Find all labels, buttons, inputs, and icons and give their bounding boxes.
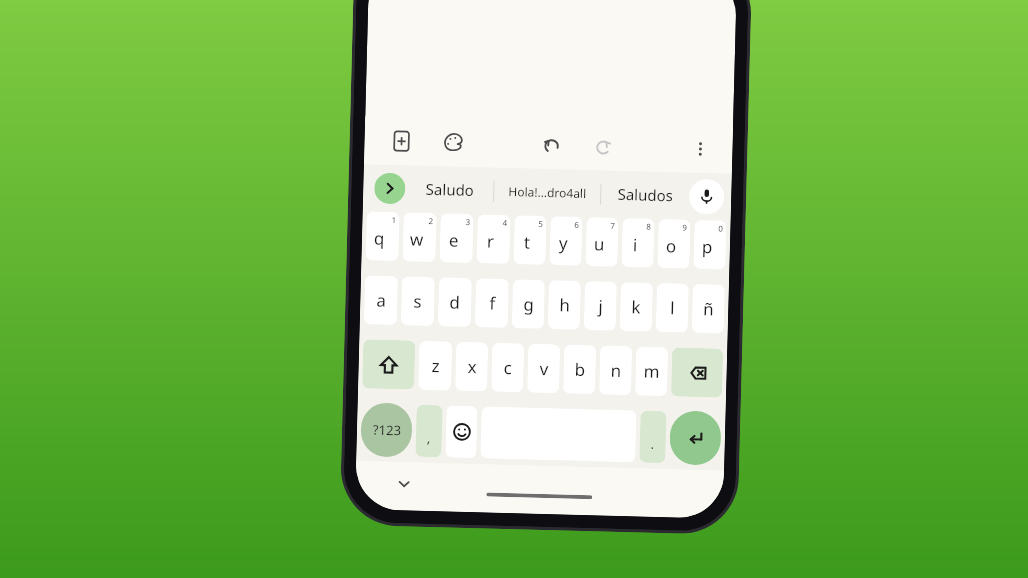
staticText: b (574, 358, 586, 381)
staticText: m (643, 360, 660, 383)
staticText: e (449, 228, 459, 252)
button[interactable]: e (439, 213, 474, 263)
staticText: l (670, 296, 676, 319)
staticText: z (431, 354, 440, 377)
button[interactable]: q (365, 211, 400, 261)
button[interactable]: w (402, 212, 437, 262)
button[interactable]: Hola!…dro4all (494, 168, 601, 216)
staticText: g (523, 292, 535, 316)
staticText: , (427, 429, 431, 447)
staticText: Hola!…dro4all (508, 183, 586, 201)
button[interactable]: Shift (362, 339, 415, 390)
staticText: s (413, 290, 423, 313)
button[interactable]: z (418, 341, 452, 390)
button[interactable]: Themes (436, 125, 471, 160)
button[interactable]: c (491, 343, 524, 392)
staticText: q (374, 226, 385, 250)
button[interactable]: Backspace (671, 347, 723, 398)
button[interactable]: Clipboard (384, 124, 419, 159)
staticText: 5 (538, 218, 544, 229)
button[interactable]: p (693, 220, 727, 270)
button[interactable]: Emoji (445, 405, 478, 458)
button[interactable]: o (657, 219, 691, 269)
button[interactable]: y (549, 216, 583, 266)
staticText: y (559, 231, 568, 254)
staticText: p (702, 235, 713, 258)
staticText: x (467, 355, 477, 378)
staticText: 4 (502, 217, 508, 228)
button[interactable]: ñ (692, 284, 725, 334)
staticText: k (631, 295, 642, 319)
button[interactable]: Hide keyboard (388, 468, 419, 499)
button[interactable]: , (415, 405, 443, 457)
staticText: ?123 (373, 420, 401, 439)
button[interactable]: Redo (586, 128, 623, 165)
staticText: j (598, 294, 604, 317)
staticText: h (559, 293, 571, 317)
button[interactable]: ?123 (360, 402, 413, 457)
button[interactable]: Voice input (689, 179, 725, 215)
button[interactable]: i (621, 218, 655, 268)
staticText: . (650, 435, 655, 453)
staticText: Saludo (425, 179, 475, 200)
button[interactable]: s (401, 276, 435, 326)
button[interactable]: h (548, 280, 581, 330)
staticText: c (503, 356, 513, 379)
staticText: 6 (574, 219, 580, 230)
staticText: 9 (682, 222, 688, 233)
staticText: t (524, 230, 531, 254)
button[interactable]: u (585, 217, 619, 267)
staticText: v (539, 357, 549, 380)
button[interactable]: d (438, 277, 472, 327)
staticText: 1 (391, 214, 397, 225)
staticText: i (633, 233, 638, 256)
button[interactable]: Undo (532, 127, 569, 163)
staticText: 0 (718, 222, 724, 234)
button[interactable]: t (513, 215, 547, 265)
button[interactable]: a (364, 275, 398, 325)
staticText: u (594, 232, 605, 256)
staticText: 7 (610, 220, 616, 231)
staticText: w (410, 227, 424, 251)
staticText: o (666, 234, 677, 257)
staticText: a (376, 289, 387, 312)
button[interactable]: x (455, 342, 488, 391)
button[interactable]: Space (480, 406, 637, 462)
staticText: r (487, 229, 495, 253)
button[interactable]: m (635, 346, 668, 396)
button[interactable]: k (620, 282, 653, 332)
button[interactable]: Enter (669, 410, 722, 466)
button[interactable]: Expand suggestions (374, 172, 406, 204)
button[interactable]: f (475, 278, 509, 328)
staticText: f (489, 291, 496, 315)
button[interactable]: . (639, 410, 667, 463)
button[interactable]: Saludo (405, 165, 494, 214)
button[interactable]: v (527, 344, 560, 393)
button[interactable]: r (476, 214, 511, 264)
staticText: ñ (703, 297, 715, 320)
staticText: 2 (428, 215, 434, 226)
button[interactable]: More options (684, 133, 717, 165)
button[interactable]: l (656, 283, 689, 333)
button[interactable]: Saludos (601, 170, 690, 219)
button[interactable]: j (584, 281, 617, 331)
staticText: d (449, 290, 461, 314)
staticText: 8 (646, 221, 652, 232)
staticText: 3 (465, 216, 471, 227)
staticText: Saludos (617, 184, 673, 205)
button[interactable]: b (563, 344, 596, 394)
staticText: n (610, 359, 622, 382)
button[interactable]: n (599, 345, 632, 395)
button[interactable]: g (512, 279, 545, 329)
